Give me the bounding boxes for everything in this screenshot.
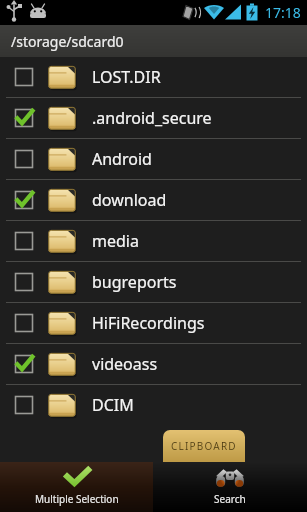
button[interactable]: Unchecked — [14, 272, 34, 292]
staticText: videoass — [92, 353, 158, 375]
button[interactable]: Checked — [14, 190, 34, 210]
button[interactable]: Unchecked — [0, 57, 307, 97]
button[interactable]: Unchecked — [14, 395, 34, 415]
staticText: bugreports — [92, 271, 177, 293]
staticText: HiFiRecordings — [92, 312, 205, 334]
button[interactable]: CLIPBOARD — [163, 430, 245, 462]
staticText: Multiple Selection — [35, 492, 119, 506]
staticText: Android — [92, 148, 152, 170]
button[interactable]: Checked — [0, 344, 307, 384]
staticText: DCIM — [92, 394, 134, 416]
staticText: Search — [214, 492, 246, 506]
staticText: /storage/sdcard0 — [11, 32, 124, 51]
button[interactable]: Checked — [14, 108, 34, 128]
staticText: LOST.DIR — [92, 66, 161, 88]
button[interactable]: Unchecked — [0, 262, 307, 302]
button[interactable]: Unchecked — [0, 303, 307, 343]
staticText: CLIPBOARD — [171, 439, 237, 453]
button[interactable]: Checked — [14, 354, 34, 374]
button[interactable]: Unchecked — [0, 385, 307, 425]
staticText: .android_secure — [92, 107, 212, 129]
button[interactable]: Checked — [0, 98, 307, 138]
staticText: 17:18 — [265, 3, 301, 22]
button[interactable]: Unchecked — [14, 231, 34, 251]
button[interactable]: Unchecked — [0, 139, 307, 179]
button[interactable]: Unchecked — [14, 313, 34, 333]
staticText: media — [92, 230, 139, 252]
button[interactable]: Unchecked — [14, 149, 34, 169]
button[interactable]: Unchecked — [0, 221, 307, 261]
button[interactable]: Multiple Selection — [0, 462, 153, 512]
button[interactable]: Search — [153, 462, 307, 512]
staticText: download — [92, 189, 167, 211]
button[interactable]: Unchecked — [14, 67, 34, 87]
button[interactable]: Checked — [0, 180, 307, 220]
